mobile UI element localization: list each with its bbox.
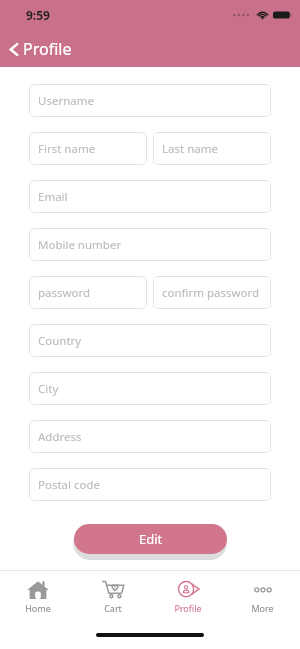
button[interactable]: First name xyxy=(29,132,147,165)
button[interactable]: Email xyxy=(29,180,271,213)
other: Home xyxy=(27,580,49,599)
button[interactable]: Profile xyxy=(150,571,225,614)
other: Profile xyxy=(176,580,200,599)
button[interactable]: Edit xyxy=(74,524,227,554)
button[interactable]: Cart xyxy=(75,571,150,614)
staticText: Edit xyxy=(139,530,163,548)
button[interactable]: Mobile number xyxy=(29,228,271,261)
staticText: Last name xyxy=(162,141,218,157)
staticText: Country xyxy=(38,333,82,349)
button[interactable]: Home xyxy=(0,571,75,614)
staticText: Mobile number xyxy=(38,237,122,253)
other: Back xyxy=(9,41,20,58)
staticText: Postal code xyxy=(38,477,101,493)
staticText: Profile xyxy=(23,38,72,60)
button[interactable]: More xyxy=(225,571,300,614)
button[interactable]: password xyxy=(29,276,147,309)
staticText: Email xyxy=(38,189,68,205)
button[interactable]: Country xyxy=(29,324,271,357)
staticText: 9:59 xyxy=(26,7,50,23)
other: Cart xyxy=(101,580,124,599)
staticText: Home xyxy=(25,602,51,614)
button[interactable]: Username xyxy=(29,84,271,117)
staticText: First name xyxy=(38,141,96,157)
other: More xyxy=(251,580,275,599)
button[interactable]: Postal code xyxy=(29,468,271,501)
staticText: Profile xyxy=(174,602,202,614)
staticText: confirm password xyxy=(162,285,260,301)
staticText: Username xyxy=(38,93,94,109)
button[interactable]: Address xyxy=(29,420,271,453)
staticText: Address xyxy=(38,429,82,445)
staticText: password xyxy=(38,285,91,301)
button[interactable]: Last name xyxy=(153,132,271,165)
staticText: More xyxy=(251,602,274,614)
button[interactable]: Back xyxy=(0,34,82,64)
staticText: Cart xyxy=(104,602,122,614)
button[interactable]: confirm password xyxy=(153,276,271,309)
button[interactable]: City xyxy=(29,372,271,405)
staticText: City xyxy=(38,381,59,397)
